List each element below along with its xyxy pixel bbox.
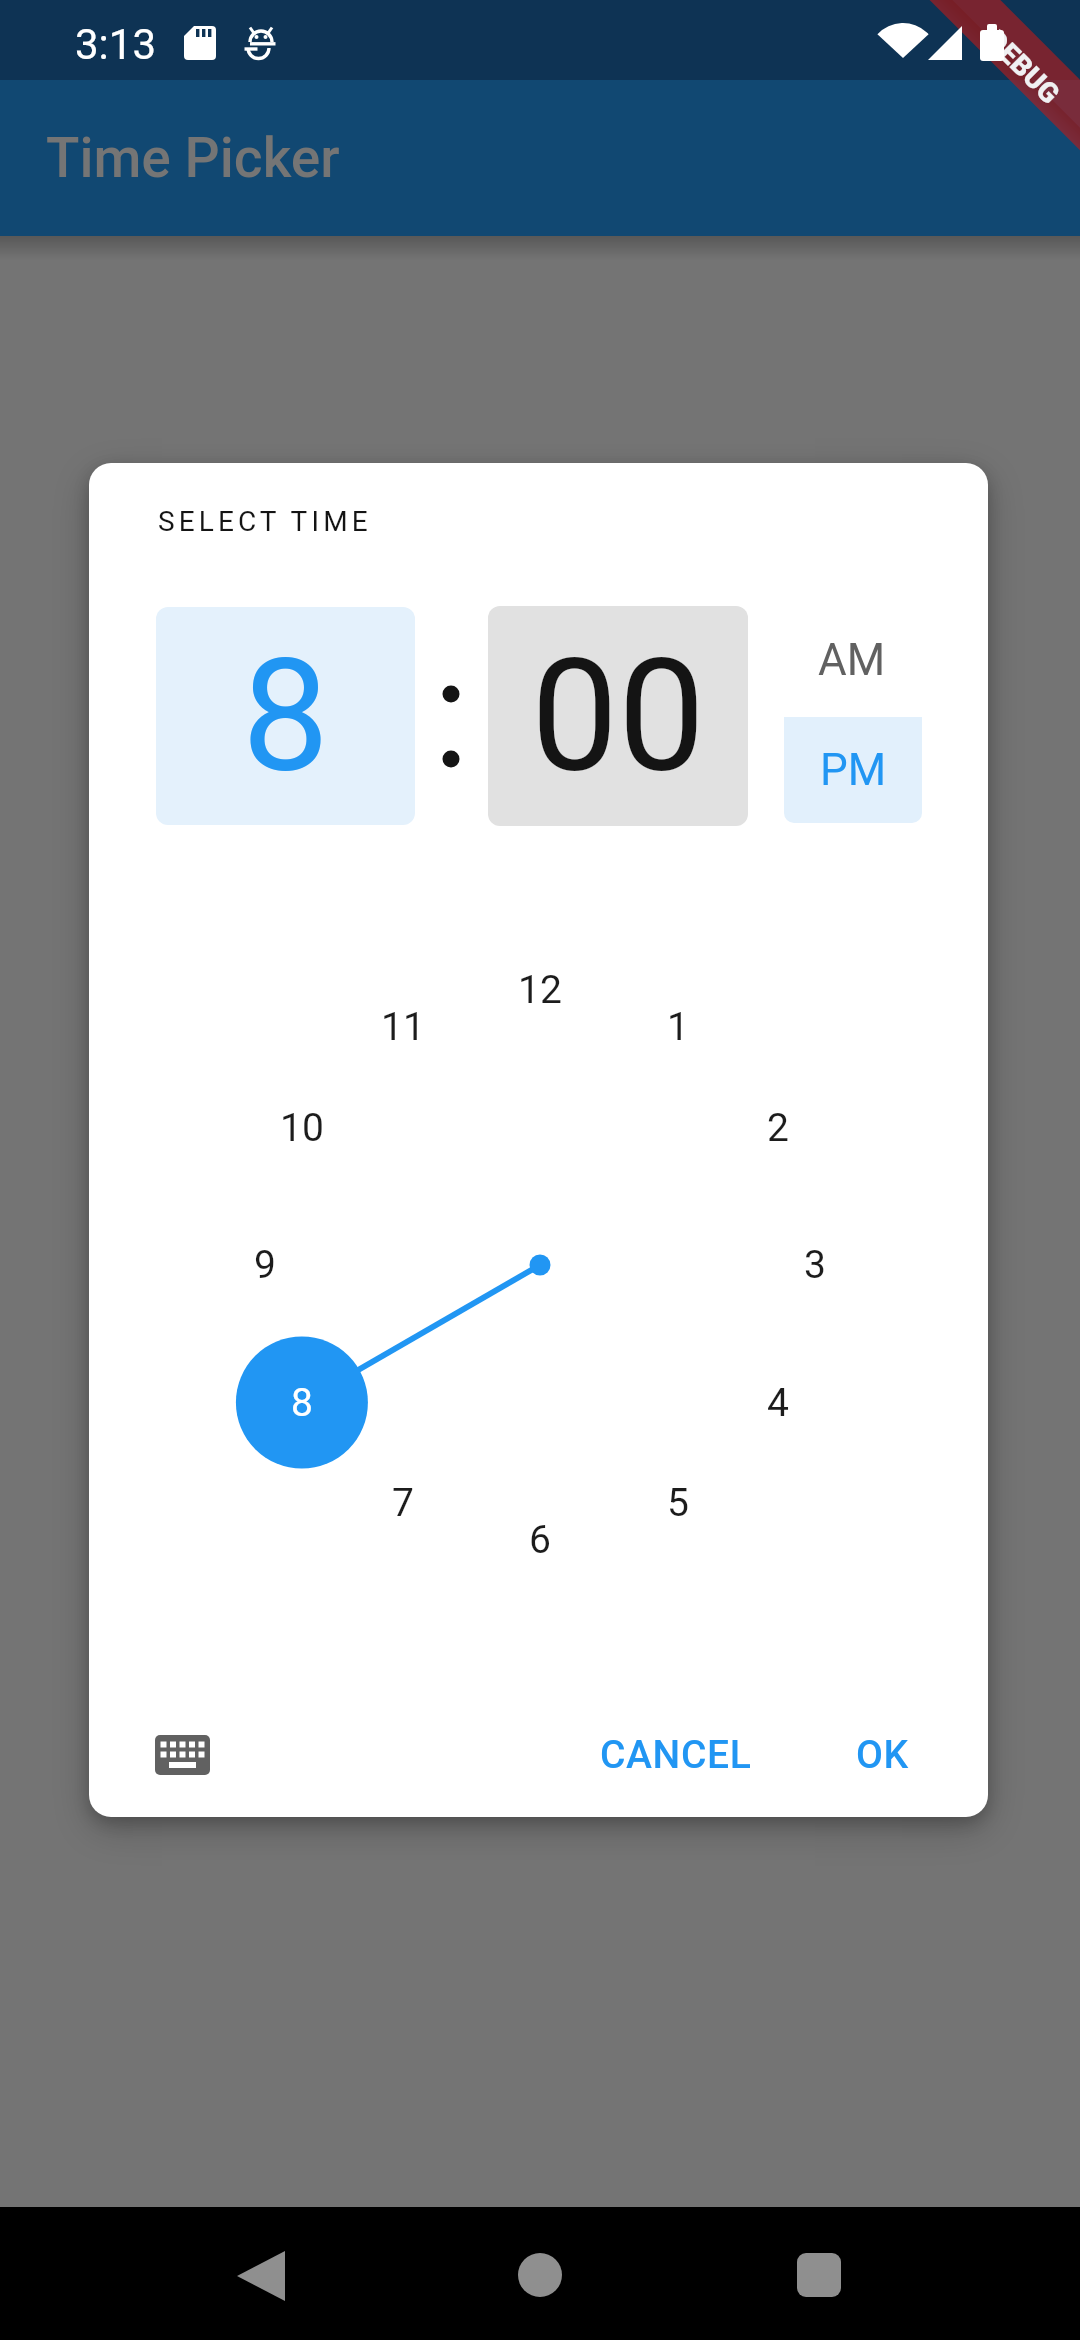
staticText: AM [818,634,886,686]
staticText: 5 [667,1480,689,1526]
button[interactable]: 9 [205,1225,325,1305]
button[interactable]: 2 [718,1088,838,1168]
staticText: DEBUG [980,24,1067,111]
staticText: 12 [518,967,562,1013]
staticText: 7 [392,1480,414,1526]
button[interactable]: 11 [343,987,463,1067]
staticText: SELECT TIME [158,505,372,538]
button[interactable]: 3 [755,1225,875,1305]
staticText: 00 [531,625,706,807]
staticText: 3:13 [75,20,156,66]
staticText: 10 [280,1105,324,1151]
staticText: 11 [381,1004,425,1050]
button[interactable]: 1 [618,987,738,1067]
button[interactable] [466,2220,614,2330]
button[interactable]: CANCEL [586,1715,766,1795]
staticText: 4 [767,1380,789,1426]
button[interactable]: 12 [480,950,600,1030]
staticText: 3 [804,1242,826,1288]
button[interactable]: AM [789,630,914,690]
staticText: Time Picker [46,126,340,190]
button[interactable]: 8 [242,1363,362,1443]
button[interactable] [745,2220,893,2330]
staticText: OK [856,1732,909,1778]
button[interactable]: 00 [488,606,748,826]
button[interactable]: 10 [242,1088,362,1168]
button[interactable]: OK [812,1715,952,1795]
staticText: 9 [254,1242,276,1288]
button[interactable]: 4 [718,1363,838,1443]
button[interactable]: 6 [480,1500,600,1580]
staticText: PM [820,744,887,796]
button[interactable]: 7 [343,1463,463,1543]
button[interactable] [187,2220,335,2330]
button[interactable]: 8 [156,607,415,825]
staticText: 2 [767,1105,789,1151]
staticText: 6 [529,1517,551,1563]
staticText: 8 [242,625,330,807]
button[interactable] [132,1705,232,1805]
staticText: 1 [667,1004,689,1050]
staticText: CANCEL [600,1732,752,1778]
staticText: 8 [291,1380,313,1426]
button[interactable]: PM [784,717,922,823]
button[interactable]: 5 [618,1463,738,1543]
